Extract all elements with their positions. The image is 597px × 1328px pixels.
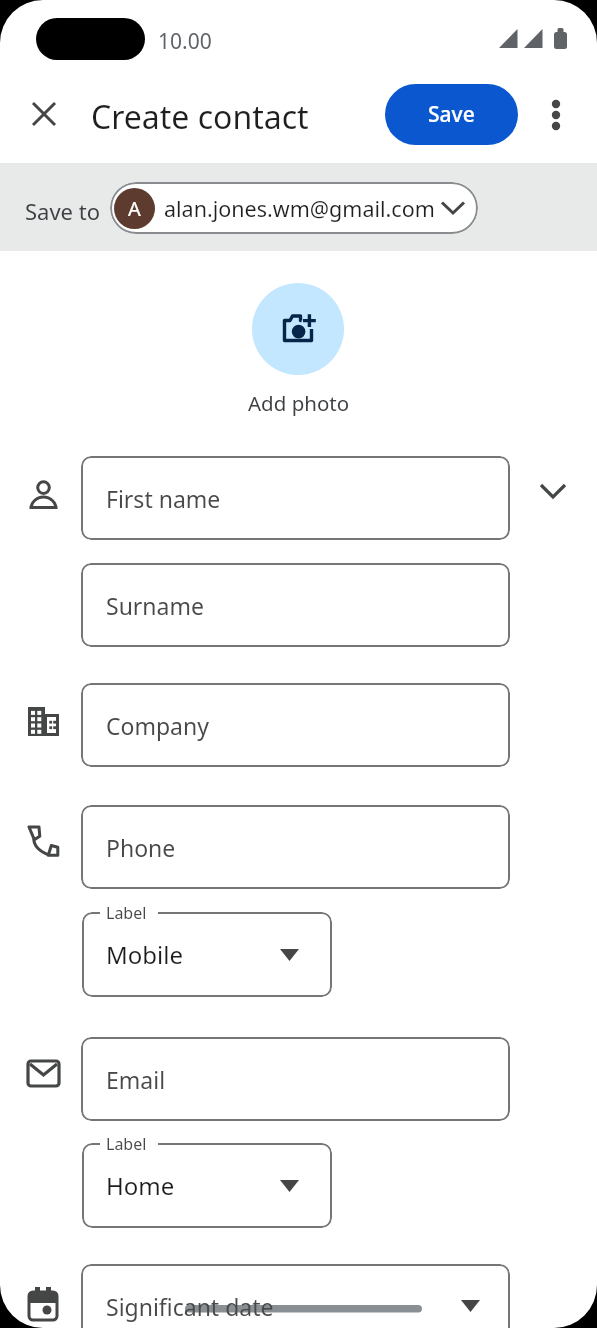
button[interactable] bbox=[540, 93, 572, 137]
staticText: 10.00 bbox=[158, 27, 212, 56]
staticText: alan.jones.wm@gmail.com bbox=[164, 194, 435, 223]
button[interactable] bbox=[81, 1264, 510, 1328]
staticText: Save to bbox=[25, 196, 100, 226]
button[interactable]: Home bbox=[82, 1143, 332, 1228]
button[interactable]: Phone bbox=[81, 805, 510, 889]
button[interactable] bbox=[252, 283, 344, 375]
staticText: Label bbox=[106, 902, 147, 924]
button[interactable]: Email bbox=[81, 1037, 510, 1121]
staticText: Surname bbox=[106, 590, 204, 621]
staticText: Email bbox=[106, 1064, 166, 1095]
button[interactable]: Company bbox=[81, 683, 510, 767]
button[interactable] bbox=[24, 94, 64, 134]
button[interactable]: Save bbox=[385, 84, 518, 145]
staticText: Create contact bbox=[91, 95, 309, 139]
staticText: Company bbox=[106, 710, 209, 741]
button[interactable] bbox=[536, 474, 570, 508]
staticText: Phone bbox=[106, 832, 176, 863]
staticText: Mobile bbox=[106, 938, 183, 971]
button[interactable]: Mobile bbox=[82, 912, 332, 997]
staticText: First name bbox=[106, 483, 221, 514]
button[interactable]: First name bbox=[81, 456, 510, 540]
button[interactable]: Surname bbox=[81, 563, 510, 647]
button[interactable]: A bbox=[110, 182, 478, 234]
staticText: Home bbox=[106, 1169, 175, 1202]
staticText: A bbox=[128, 195, 141, 222]
staticText: Save bbox=[428, 100, 475, 129]
staticText: Add photo bbox=[248, 389, 350, 417]
staticText: Label bbox=[106, 1133, 147, 1155]
staticText: Significant date bbox=[106, 1291, 274, 1322]
